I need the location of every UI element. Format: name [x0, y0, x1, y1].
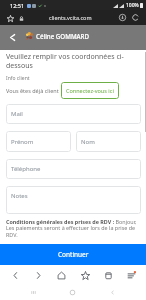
button[interactable]: Menu [123, 267, 139, 283]
staticText: Nom [81, 138, 95, 146]
staticText: Vous êtes déjà client [6, 87, 59, 94]
button[interactable]: Connectez-vous ici [61, 82, 119, 99]
button[interactable]: Back [7, 267, 23, 283]
staticText: 100% [126, 2, 139, 9]
button[interactable]: Nom [76, 131, 141, 152]
button[interactable]: Bookmark [4, 12, 16, 24]
button[interactable]: Forward [30, 267, 46, 283]
button[interactable]: Notes [6, 186, 141, 214]
button[interactable]: Prénom [6, 131, 71, 152]
button[interactable]: Continuer [0, 244, 146, 265]
staticText: Téléphone [11, 165, 41, 173]
button[interactable]: Home [53, 267, 69, 283]
button[interactable]: Tabs [100, 267, 116, 283]
staticText: Notes [11, 192, 28, 200]
button[interactable]: Home [65, 285, 79, 299]
button[interactable]: Mail [6, 104, 141, 124]
button[interactable]: Back [4, 29, 20, 45]
button[interactable]: Reload [130, 12, 141, 23]
button[interactable]: Bookmark [77, 267, 93, 283]
button[interactable]: Téléphone [6, 159, 141, 179]
button[interactable]: Recents [26, 285, 40, 299]
staticText: Céline GOMMARD [36, 32, 90, 40]
staticText: Mail [11, 110, 23, 118]
staticText: Connectez-vous ici [66, 87, 114, 94]
staticText: Info client [6, 75, 30, 82]
staticText: 12:51 [10, 2, 25, 9]
staticText: Prénom [11, 138, 34, 146]
button[interactable]: Download [117, 12, 128, 23]
staticText: Continuer [58, 250, 89, 259]
staticText: Conditions générales des prises de RDV :… [6, 218, 141, 239]
staticText: Veuillez remplir vos coordonnées ci-dess… [6, 52, 141, 70]
button[interactable]: Secure [16, 13, 26, 23]
button[interactable]: Back [105, 285, 119, 299]
staticText: clients.vcita.com [49, 14, 92, 21]
